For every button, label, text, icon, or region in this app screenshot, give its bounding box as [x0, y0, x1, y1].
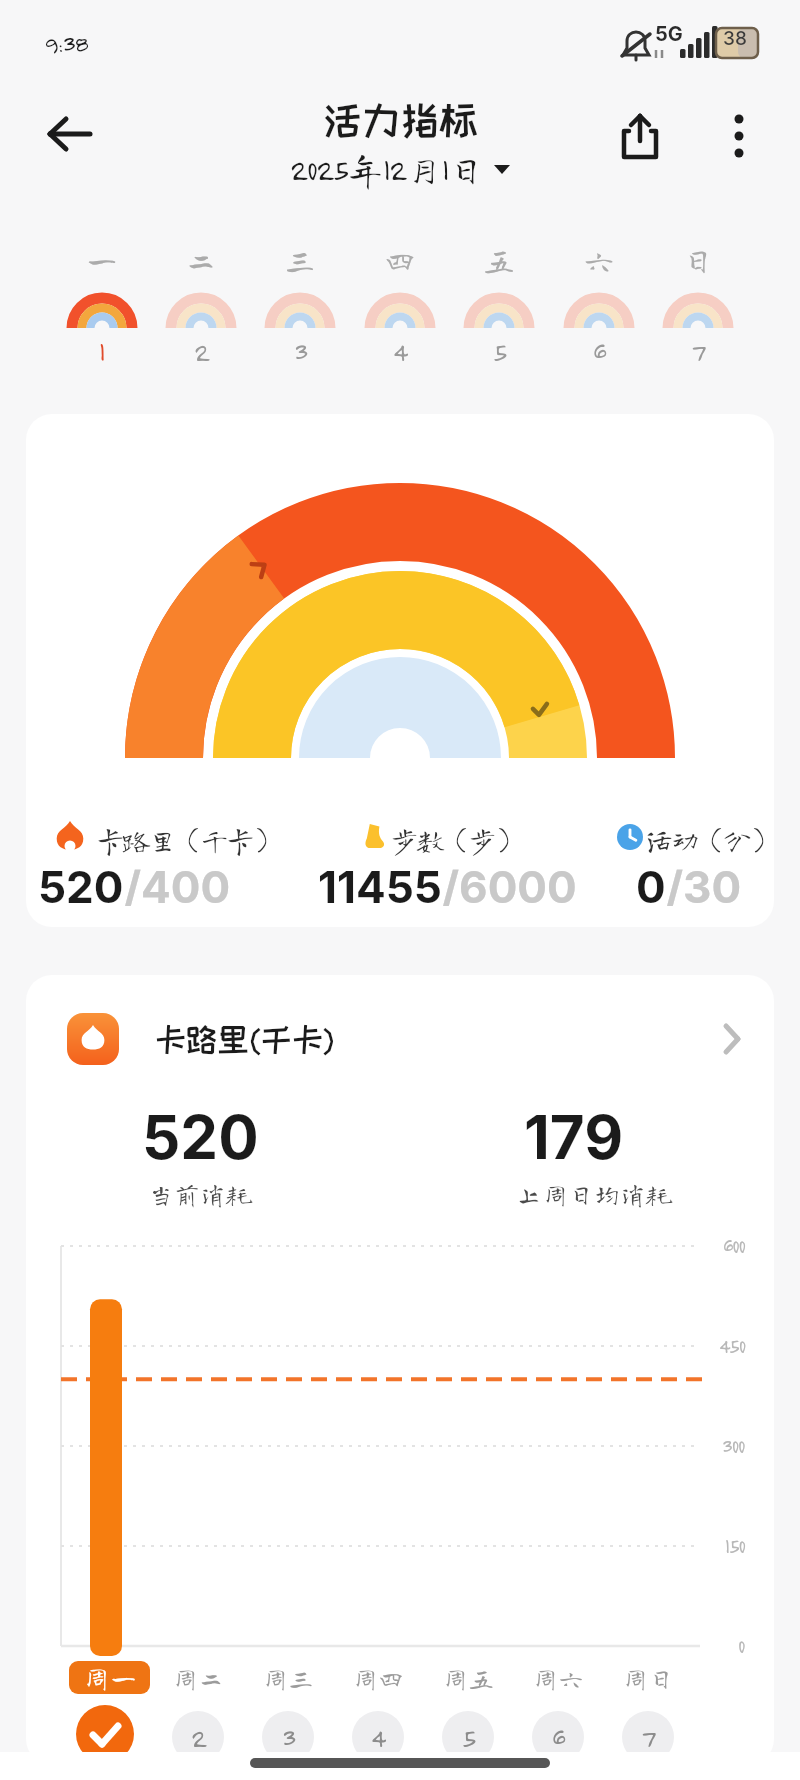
staticText: 5: [462, 1721, 475, 1753]
button[interactable]: [715, 108, 763, 164]
button[interactable]: 周四: [338, 1661, 418, 1694]
staticText: 2025年12月1日: [290, 151, 484, 187]
staticText: 周二: [172, 1665, 225, 1691]
staticText: 二: [185, 244, 218, 276]
staticText: 周四: [352, 1665, 405, 1691]
staticText: 上周日均消耗: [516, 1181, 673, 1207]
staticText: 5G: [655, 22, 683, 44]
button[interactable]: 五: [454, 240, 544, 375]
button[interactable]: 三: [255, 240, 345, 375]
button[interactable]: 周五: [428, 1661, 508, 1694]
button[interactable]: [40, 104, 100, 164]
staticText: 周日: [622, 1665, 675, 1691]
button[interactable]: 4: [352, 1711, 404, 1763]
staticText: /400: [124, 860, 231, 906]
button[interactable]: 2025年12月1日: [250, 148, 550, 190]
button[interactable]: 周二: [158, 1661, 238, 1694]
staticText: 600: [723, 1234, 745, 1258]
staticText: 五: [483, 244, 516, 276]
button[interactable]: [76, 1705, 134, 1763]
staticText: 当前消耗: [148, 1181, 253, 1207]
button[interactable]: 周三: [248, 1661, 328, 1694]
staticText: 4: [393, 335, 407, 367]
button[interactable]: 周六: [518, 1661, 598, 1694]
button[interactable]: 六: [554, 240, 644, 375]
staticText: 300: [722, 1434, 745, 1458]
staticText: 150: [725, 1534, 745, 1558]
button[interactable]: 3: [262, 1711, 314, 1763]
staticText: 周五: [442, 1665, 495, 1691]
button[interactable]: 周一: [69, 1661, 150, 1694]
staticText: 活力指标: [323, 99, 478, 141]
staticText: 520: [142, 1101, 259, 1174]
staticText: 2: [191, 1721, 206, 1753]
button[interactable]: 5: [442, 1711, 494, 1763]
staticText: 4: [371, 1721, 385, 1753]
staticText: /6000: [442, 860, 577, 906]
staticText: 179: [524, 1101, 624, 1174]
button[interactable]: 7: [622, 1711, 674, 1763]
staticText: 日: [682, 244, 715, 276]
button[interactable]: [612, 108, 668, 164]
staticText: 520: [38, 860, 124, 906]
button[interactable]: [40, 1000, 740, 1080]
staticText: 450: [719, 1334, 745, 1358]
button[interactable]: 日: [653, 240, 743, 375]
button[interactable]: 6: [532, 1711, 584, 1763]
staticText: 7: [691, 335, 705, 367]
staticText: 六: [583, 244, 616, 276]
staticText: 6: [552, 1721, 565, 1753]
staticText: 周三: [262, 1665, 315, 1691]
button[interactable]: 四: [355, 240, 445, 375]
staticText: 卡路里(千卡): [155, 1022, 336, 1056]
staticText: 0: [636, 860, 666, 906]
button[interactable]: 二: [156, 240, 246, 375]
staticText: 3: [282, 1721, 295, 1753]
staticText: 卡路里（千卡）: [96, 825, 279, 854]
staticText: 活动（分）: [645, 825, 776, 854]
button[interactable]: 一: [57, 240, 147, 375]
button[interactable]: 2: [172, 1711, 224, 1763]
staticText: 9:38: [44, 28, 88, 58]
staticText: 7: [641, 1721, 655, 1753]
staticText: 三: [284, 244, 317, 276]
staticText: 38: [723, 27, 747, 50]
staticText: 四: [384, 244, 417, 276]
staticText: 3: [294, 335, 307, 367]
staticText: 步数（步）: [390, 825, 521, 854]
staticText: 5: [493, 335, 506, 367]
staticText: 1: [99, 335, 105, 367]
staticText: 2: [194, 335, 209, 367]
staticText: 周一: [83, 1664, 137, 1691]
staticText: /30: [666, 860, 742, 906]
staticText: 6: [593, 335, 606, 367]
staticText: 11455: [318, 860, 442, 906]
button[interactable]: 周日: [608, 1661, 688, 1694]
staticText: 0: [738, 1634, 745, 1658]
staticText: 一: [86, 244, 119, 276]
staticText: 周六: [532, 1665, 585, 1691]
